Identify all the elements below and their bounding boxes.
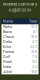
staticText: Chase (3, 35, 14, 39)
staticText: 12.4 (31, 25, 37, 29)
staticText: Hotel (3, 60, 12, 64)
staticText: Name (3, 19, 13, 23)
staticText: 22.3 (30, 45, 37, 49)
staticText: 15.6 (31, 50, 37, 54)
staticText: Monthly Summary (3, 2, 37, 6)
staticText: 3.4 (32, 65, 37, 69)
staticText: 11.2 (32, 60, 37, 64)
staticText: 4.7 (32, 40, 37, 44)
staticText: 19.0 (31, 35, 37, 39)
staticText: Echo (3, 45, 11, 49)
staticText: Bravo (3, 30, 12, 34)
staticText: 7.9 (32, 55, 37, 59)
staticText: Golf (3, 55, 10, 59)
staticText: 8.1 (33, 30, 37, 34)
staticText: August 2024 (8, 7, 31, 12)
staticText: Juliet (3, 70, 12, 74)
staticText: Foxtrot (3, 50, 14, 54)
staticText: Delta (3, 40, 12, 44)
staticText: Alpha (3, 25, 12, 29)
staticText: Total (29, 19, 37, 23)
staticText: India (3, 65, 11, 69)
staticText: 18.8 (31, 70, 37, 74)
